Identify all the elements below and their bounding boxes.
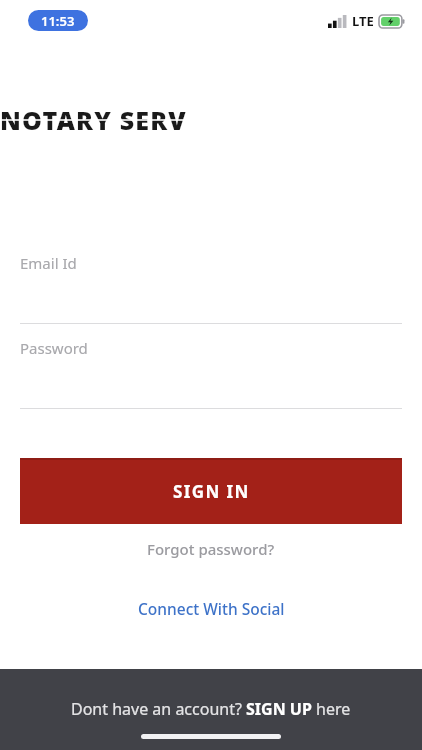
staticText: NOTARY SERV — [0, 103, 187, 137]
button[interactable]: Password — [20, 338, 402, 408]
staticText: Forgot password? — [147, 539, 275, 559]
staticText: LTE — [352, 12, 374, 30]
staticText: 11:53 — [41, 12, 75, 30]
button[interactable]: Email Id — [20, 253, 402, 323]
staticText: Email Id — [20, 253, 77, 273]
button[interactable]: Forgot password? — [0, 536, 422, 562]
button[interactable]: Dont have an account? SIGN UP here — [0, 695, 422, 723]
button[interactable]: Connect With Social — [0, 595, 422, 621]
staticText: SIGN IN — [173, 480, 250, 503]
staticText: Connect With Social — [138, 598, 285, 619]
staticText: Password — [20, 338, 88, 358]
staticText: Dont have an account? SIGN UP here — [71, 698, 351, 720]
other: Home indicator — [141, 734, 281, 739]
button[interactable]: SIGN IN — [20, 458, 402, 524]
